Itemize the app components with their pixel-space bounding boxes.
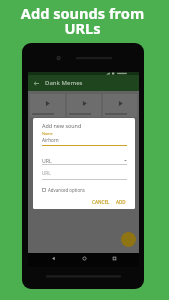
button[interactable] [103,94,137,117]
staticText: Add sounds from URLs [0,3,167,38]
button[interactable]: CANCEL [90,197,112,206]
staticText: Dank Memes [45,79,83,87]
staticText: URL [42,157,52,164]
staticText: ADD [116,199,126,204]
button[interactable]: Back [47,253,59,263]
button[interactable] [67,94,101,117]
staticText: CANCEL [92,199,110,204]
staticText: Name [42,131,53,136]
staticText: Add new sound [42,122,82,129]
button[interactable] [30,94,65,117]
button[interactable]: Add sound [121,232,136,247]
button[interactable]: Advanced options [42,186,85,194]
button[interactable]: Back [30,77,42,89]
button[interactable]: Home [78,253,90,263]
staticText: URL [42,170,51,176]
button[interactable]: Recent apps [108,253,120,263]
button[interactable]: ADD [114,197,128,206]
staticText: Airhorn [42,137,59,143]
staticText: Advanced options [48,187,85,193]
button[interactable]: URL [42,157,127,164]
